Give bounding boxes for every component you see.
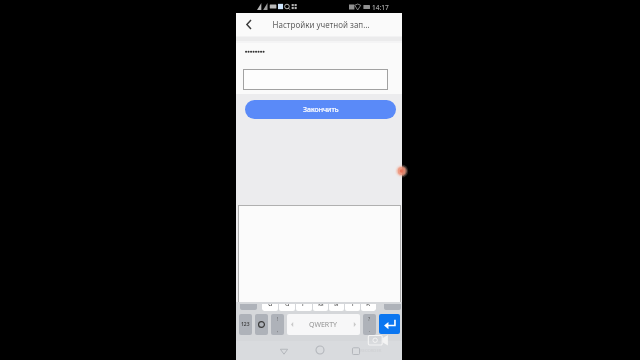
button[interactable]: Letter key: [296, 304, 312, 311]
staticText: ?: [368, 316, 371, 323]
staticText: QWERTY: [309, 320, 338, 330]
button[interactable]: Letter key: [345, 304, 360, 311]
button[interactable]: Backspace: [384, 304, 401, 310]
staticText: ,: [277, 327, 279, 334]
staticText: и: [334, 304, 339, 306]
staticText: Настройки учетной зап…: [272, 19, 370, 30]
button[interactable]: Home: [312, 342, 328, 358]
button[interactable]: Back: [276, 343, 292, 359]
staticText: ь: [366, 304, 371, 306]
staticText: 14:17: [372, 3, 389, 12]
button[interactable]: Закончить: [245, 100, 396, 119]
button[interactable]: Text field: [243, 69, 388, 90]
button[interactable]: Letter key: [279, 304, 295, 311]
button[interactable]: Recents: [348, 343, 364, 359]
staticText: т: [351, 304, 355, 306]
staticText: Закончить: [303, 105, 339, 115]
button[interactable]: Period: [363, 314, 376, 335]
button[interactable]: Letter key: [313, 304, 328, 311]
button[interactable]: Shift: [240, 304, 257, 310]
button[interactable]: Back: [240, 16, 256, 32]
button[interactable]: 123: [239, 314, 252, 335]
staticText: 123: [241, 321, 250, 328]
button[interactable]: Space: [287, 314, 360, 335]
button[interactable]: Letter key: [361, 304, 376, 311]
button[interactable]: Comma: [271, 314, 284, 335]
staticText: ч: [285, 304, 290, 306]
button[interactable]: Language: [255, 314, 268, 335]
button[interactable]: Letter key: [329, 304, 344, 311]
staticText: с: [302, 304, 306, 306]
staticText: м: [318, 304, 324, 306]
staticText: !: [277, 316, 279, 323]
staticText: .: [369, 327, 371, 334]
staticText: я: [268, 304, 273, 306]
button[interactable]: Letter key: [262, 304, 278, 311]
button[interactable]: Floating bubble: [395, 164, 409, 178]
button[interactable]: Enter: [379, 314, 400, 334]
